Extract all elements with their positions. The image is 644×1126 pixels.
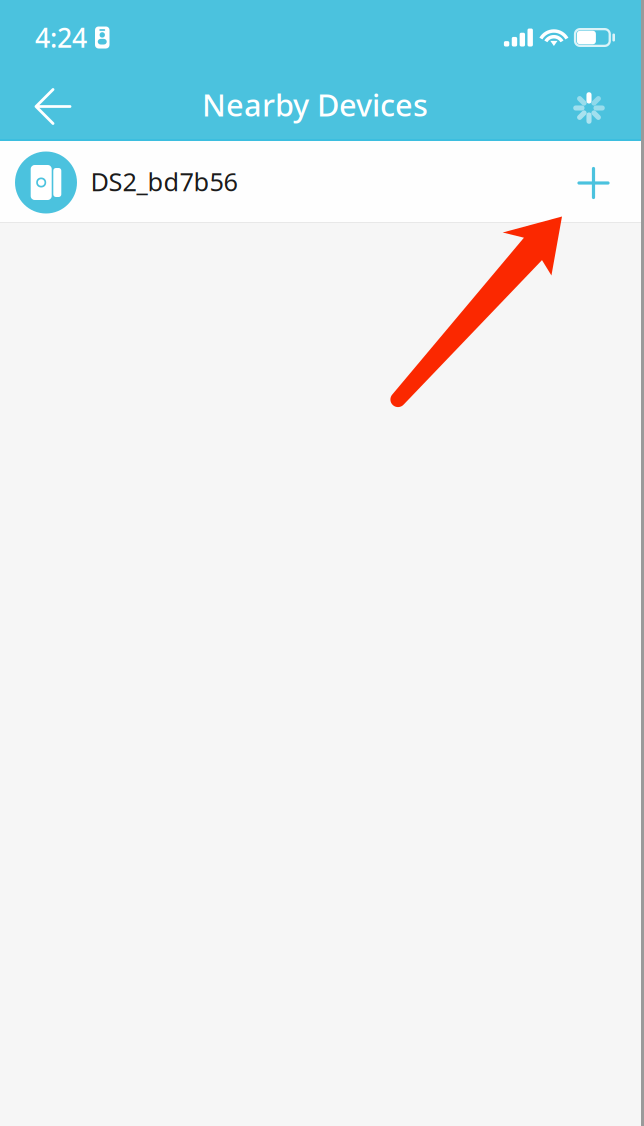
- staticText: DS2_bd7b56: [90, 165, 237, 198]
- staticText: 4:24: [35, 20, 87, 55]
- button[interactable]: Back: [16, 69, 90, 139]
- button[interactable]: Add DS2_bd7b56: [566, 147, 621, 216]
- button[interactable]: Scanning for devices: [555, 69, 630, 140]
- button[interactable]: DS2_bd7b56: [0, 141, 644, 222]
- staticText: Nearby Devices: [202, 84, 428, 125]
